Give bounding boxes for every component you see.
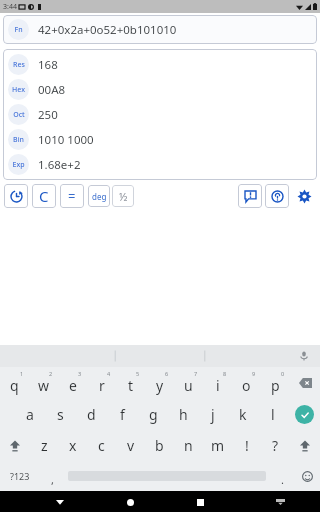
button[interactable]: Recents	[190, 492, 210, 512]
button[interactable]: 4	[87, 367, 116, 399]
button[interactable]: 1	[0, 367, 29, 399]
button[interactable]: Home	[120, 492, 140, 512]
staticText: ,	[51, 472, 54, 487]
button[interactable]: .	[270, 461, 294, 491]
button[interactable]: d	[76, 399, 107, 430]
staticText: =	[68, 187, 76, 205]
staticText: 5	[136, 370, 140, 377]
button[interactable]: Shift	[290, 430, 320, 461]
staticText: Bin	[13, 135, 24, 145]
staticText: Fn	[14, 25, 23, 35]
button[interactable]: Emoji	[294, 461, 320, 491]
staticText: 1	[20, 370, 24, 377]
button[interactable]: Fn	[3, 15, 317, 44]
button[interactable]: Help	[265, 184, 289, 208]
staticText: j	[211, 405, 215, 424]
staticText: b	[155, 436, 164, 455]
button[interactable]: Degrees	[88, 185, 110, 207]
staticText: o	[242, 376, 251, 395]
button[interactable]: 5	[116, 367, 145, 399]
button[interactable]: h	[168, 399, 198, 430]
staticText: e	[69, 376, 77, 395]
button[interactable]: 9	[232, 367, 261, 399]
button[interactable]: Backspace	[290, 367, 320, 399]
staticText: w	[38, 376, 50, 395]
button[interactable]: 0	[261, 367, 290, 399]
button[interactable]: Shift	[0, 430, 30, 461]
button[interactable]: Hex	[3, 77, 317, 102]
staticText: y	[156, 376, 164, 395]
staticText: h	[179, 405, 188, 424]
button[interactable]: 8	[203, 367, 232, 399]
staticText: m	[211, 436, 225, 455]
button[interactable]: a	[14, 399, 45, 430]
button[interactable]: b	[145, 430, 174, 461]
button[interactable]: j	[198, 399, 228, 430]
staticText: C	[39, 186, 49, 206]
button[interactable]: k	[228, 399, 258, 430]
button[interactable]: g	[138, 399, 168, 430]
button[interactable]: ,	[40, 461, 64, 491]
staticText: g	[149, 405, 158, 424]
staticText: ?	[272, 436, 279, 455]
button[interactable]: ?	[261, 430, 290, 461]
button[interactable]: 3	[58, 367, 87, 399]
staticText: r	[99, 376, 105, 395]
staticText: 00A8	[38, 82, 66, 98]
button[interactable]: n	[174, 430, 203, 461]
button[interactable]: Feedback	[238, 184, 262, 208]
button[interactable]: Enter	[288, 399, 320, 430]
button[interactable]: Res	[3, 52, 317, 77]
button[interactable]: ?123	[0, 461, 40, 491]
staticText: c	[98, 436, 105, 455]
staticText: 9	[252, 370, 256, 377]
button[interactable]: Exp	[3, 152, 317, 177]
staticText: t	[128, 376, 134, 395]
button[interactable]: 7	[174, 367, 203, 399]
button[interactable]: Oct	[3, 102, 317, 127]
button[interactable]: Bin	[3, 127, 317, 152]
staticText: z	[41, 436, 48, 455]
staticText: 168	[38, 57, 58, 73]
button[interactable]: Voice input	[296, 348, 312, 364]
button[interactable]: !	[232, 430, 261, 461]
button[interactable]: Clear	[32, 184, 56, 208]
button[interactable]: Back	[50, 492, 70, 512]
staticText: d	[87, 405, 96, 424]
button[interactable]: History	[4, 184, 28, 208]
staticText: s	[57, 405, 64, 424]
button[interactable]: m	[203, 430, 232, 461]
button[interactable]: v	[116, 430, 145, 461]
button[interactable]: c	[87, 430, 116, 461]
button[interactable]: l	[258, 399, 288, 430]
button[interactable]: Settings	[292, 184, 316, 208]
staticText: 7	[194, 370, 198, 377]
staticText: 42+0x2a+0o52+0b101010	[38, 22, 177, 38]
staticText: 1010 1000	[38, 132, 94, 148]
button[interactable]: 6	[145, 367, 174, 399]
staticText: 1.68e+2	[38, 157, 81, 173]
staticText: !	[245, 436, 249, 455]
button[interactable]: Fraction	[112, 185, 134, 207]
staticText: u	[184, 376, 193, 395]
button[interactable]: 2	[29, 367, 58, 399]
button[interactable]: x	[58, 430, 87, 461]
staticText: q	[10, 376, 19, 395]
staticText: 2	[49, 370, 53, 377]
button[interactable]: f	[107, 399, 138, 430]
button[interactable]: s	[45, 399, 76, 430]
staticText: x	[69, 436, 77, 455]
staticText: p	[271, 376, 280, 395]
button[interactable]: Hide keyboard	[270, 492, 290, 512]
staticText: 250	[38, 107, 58, 123]
button[interactable]: z	[30, 430, 58, 461]
staticText: .	[281, 472, 284, 487]
staticText: ?123	[10, 470, 30, 482]
staticText: 0	[281, 370, 285, 377]
staticText: 6	[165, 370, 169, 377]
staticText: deg	[92, 191, 107, 202]
button[interactable]: Equals	[60, 184, 84, 208]
staticText: Hex	[12, 85, 25, 95]
staticText: ½	[119, 189, 128, 204]
